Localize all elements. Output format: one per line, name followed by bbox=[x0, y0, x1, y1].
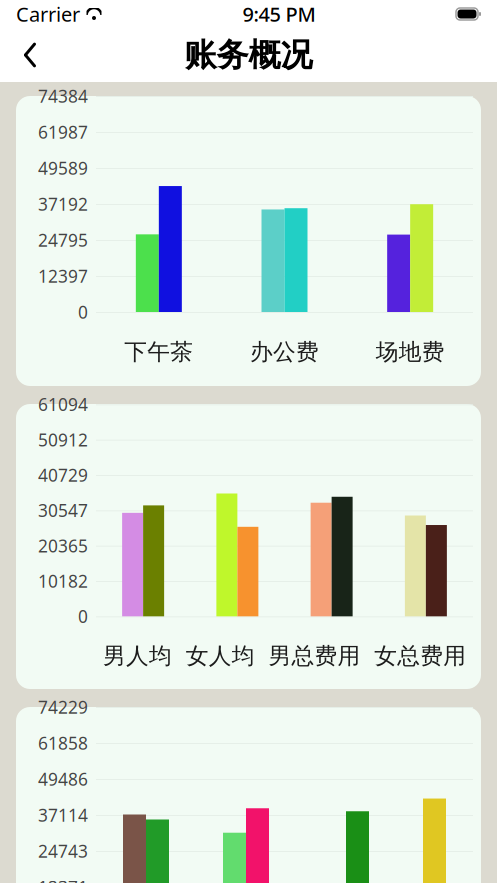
staticText: 场地费 bbox=[376, 338, 445, 366]
staticText: 74229 bbox=[38, 695, 88, 718]
staticText: 12397 bbox=[38, 264, 88, 287]
staticText: 61987 bbox=[38, 120, 88, 143]
staticText: 37114 bbox=[38, 803, 88, 826]
button[interactable]: Back bbox=[8, 33, 52, 77]
staticText: 0 bbox=[78, 605, 88, 628]
staticText: 女总费用 bbox=[374, 642, 466, 670]
staticText: 24743 bbox=[38, 839, 88, 862]
staticText: 40729 bbox=[38, 463, 88, 486]
staticText: 男人均 bbox=[103, 642, 172, 670]
staticText: 20365 bbox=[38, 534, 88, 557]
staticText: 61094 bbox=[38, 393, 88, 416]
staticText: 12371 bbox=[38, 875, 88, 883]
staticText: 49589 bbox=[38, 156, 88, 179]
staticText: 10182 bbox=[38, 569, 88, 592]
staticText: 24795 bbox=[38, 228, 88, 251]
staticText: 37192 bbox=[38, 192, 88, 215]
staticText: 74384 bbox=[38, 84, 88, 107]
staticText: 49486 bbox=[38, 767, 88, 790]
staticText: 男总费用 bbox=[268, 642, 360, 670]
staticText: 9:45 PM bbox=[242, 1, 315, 27]
staticText: 61858 bbox=[38, 731, 88, 754]
staticText: 50912 bbox=[38, 428, 88, 451]
staticText: 下午茶 bbox=[124, 338, 193, 366]
staticText: 女人均 bbox=[186, 642, 255, 670]
staticText: 办公费 bbox=[250, 338, 319, 366]
staticText: Carrier bbox=[16, 1, 80, 27]
staticText: 30547 bbox=[38, 499, 88, 522]
staticText: 账务概况 bbox=[184, 35, 312, 75]
staticText: 0 bbox=[78, 300, 88, 323]
